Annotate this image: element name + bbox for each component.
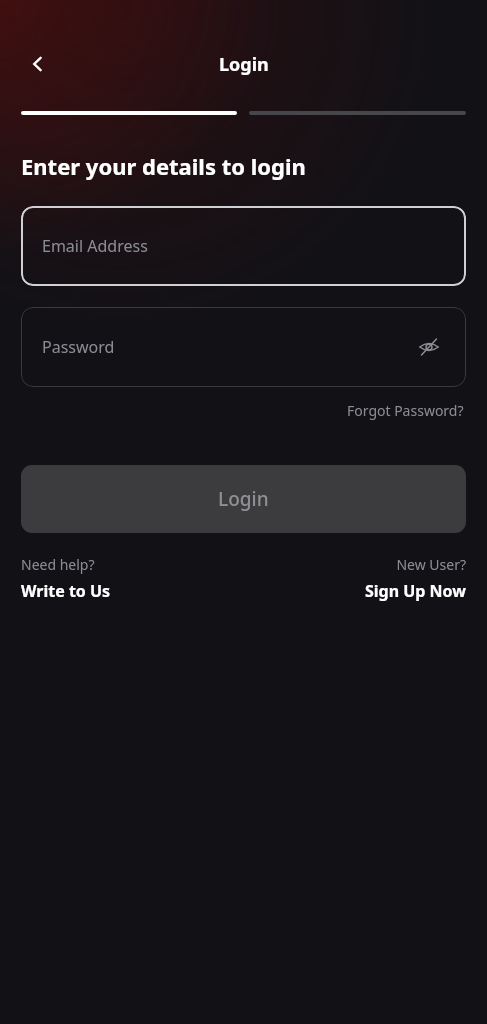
staticText: Forgot Password? xyxy=(347,401,464,420)
button[interactable]: Password xyxy=(21,307,466,387)
staticText: Enter your details to login xyxy=(21,151,306,181)
staticText: Need help? xyxy=(21,555,95,574)
button[interactable]: Forgot Password? xyxy=(345,399,466,422)
staticText: Login xyxy=(218,486,269,512)
staticText: New User? xyxy=(396,555,466,574)
staticText: Email Address xyxy=(42,235,148,257)
staticText: Sign Up Now xyxy=(364,580,466,602)
staticText: Write to Us xyxy=(21,580,111,602)
button[interactable]: New User? xyxy=(364,555,466,602)
staticText: Login xyxy=(219,52,269,77)
button[interactable]: Email Address xyxy=(21,206,466,286)
staticText: Password xyxy=(42,336,115,358)
button[interactable]: Need help? xyxy=(21,555,111,602)
button[interactable]: Login xyxy=(21,465,466,533)
button[interactable]: Show password xyxy=(412,330,446,364)
button[interactable]: Back xyxy=(18,44,58,84)
